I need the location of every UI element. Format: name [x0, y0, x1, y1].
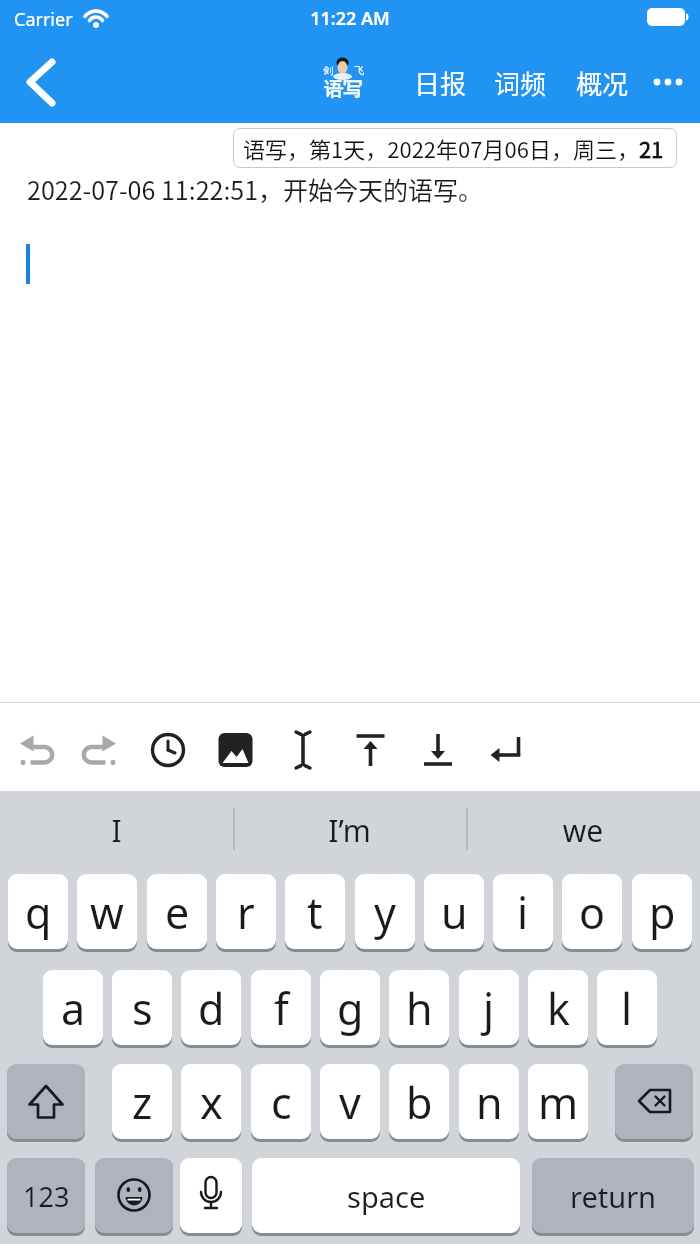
- button[interactable]: [615, 1064, 693, 1140]
- button[interactable]: return: [532, 1158, 694, 1234]
- staticText: return: [570, 1177, 657, 1216]
- button[interactable]: v: [320, 1064, 380, 1140]
- button[interactable]: space: [252, 1158, 520, 1234]
- button[interactable]: b: [389, 1064, 449, 1140]
- staticText: v: [339, 1073, 361, 1132]
- button[interactable]: [650, 70, 686, 94]
- button[interactable]: j: [459, 970, 519, 1046]
- staticText: q: [25, 883, 52, 942]
- button[interactable]: h: [389, 970, 449, 1046]
- button[interactable]: g: [320, 970, 380, 1046]
- staticText: h: [406, 979, 433, 1038]
- staticText: g: [337, 979, 364, 1038]
- button[interactable]: [7, 1064, 85, 1140]
- staticText: s: [132, 979, 153, 1038]
- button[interactable]: i: [493, 874, 553, 950]
- button[interactable]: f: [251, 970, 311, 1046]
- button[interactable]: 剑: [318, 54, 370, 110]
- button[interactable]: s: [112, 970, 172, 1046]
- button[interactable]: t: [285, 874, 345, 950]
- button[interactable]: q: [8, 874, 68, 950]
- staticText: f: [274, 979, 289, 1038]
- button[interactable]: [72, 718, 136, 782]
- staticText: m: [538, 1073, 579, 1132]
- staticText: z: [132, 1073, 153, 1132]
- button[interactable]: o: [562, 874, 622, 950]
- button[interactable]: 概况: [576, 64, 629, 102]
- button[interactable]: I’m: [233, 810, 466, 851]
- button[interactable]: m: [528, 1064, 588, 1140]
- staticText: w: [90, 883, 124, 942]
- staticText: 剑: [323, 64, 333, 77]
- staticText: x: [200, 1073, 223, 1132]
- button[interactable]: a: [43, 970, 103, 1046]
- button[interactable]: y: [355, 874, 415, 950]
- button[interactable]: [139, 718, 203, 782]
- button[interactable]: [409, 718, 473, 782]
- staticText: i: [517, 883, 529, 942]
- staticText: 飞: [354, 64, 364, 77]
- button[interactable]: I: [0, 810, 233, 851]
- button[interactable]: [95, 1158, 173, 1234]
- button[interactable]: r: [216, 874, 276, 950]
- staticText: e: [165, 883, 190, 942]
- staticText: 语写: [324, 78, 362, 102]
- staticText: 123: [23, 1178, 70, 1215]
- staticText: r: [237, 883, 255, 942]
- staticText: y: [374, 883, 396, 942]
- button[interactable]: z: [112, 1064, 172, 1140]
- button[interactable]: [342, 718, 406, 782]
- button[interactable]: [477, 718, 541, 782]
- button[interactable]: u: [424, 874, 484, 950]
- button[interactable]: [207, 718, 271, 782]
- button[interactable]: [274, 718, 338, 782]
- button[interactable]: 123: [7, 1158, 85, 1234]
- staticText: u: [441, 883, 468, 942]
- staticText: a: [61, 979, 86, 1038]
- button[interactable]: w: [77, 874, 137, 950]
- button[interactable]: n: [459, 1064, 519, 1140]
- button[interactable]: c: [251, 1064, 311, 1140]
- staticText: p: [649, 883, 676, 942]
- button[interactable]: d: [181, 970, 241, 1046]
- button[interactable]: 词频: [494, 64, 547, 102]
- button[interactable]: [180, 1158, 242, 1234]
- button[interactable]: x: [181, 1064, 241, 1140]
- staticText: 2022-07-06 11:22:51，开始今天的语写。: [27, 171, 484, 207]
- staticText: Carrier: [14, 7, 73, 32]
- staticText: 语写，第1天，2022年07月06日，周三，21: [243, 132, 664, 164]
- staticText: l: [621, 979, 633, 1038]
- button[interactable]: l: [597, 970, 657, 1046]
- staticText: k: [547, 979, 570, 1038]
- button[interactable]: [4, 718, 68, 782]
- button[interactable]: we: [466, 810, 700, 851]
- staticText: o: [579, 883, 606, 942]
- staticText: b: [406, 1073, 433, 1132]
- staticText: t: [307, 883, 323, 942]
- staticText: 11:22 AM: [300, 6, 400, 31]
- staticText: c: [271, 1073, 292, 1132]
- button[interactable]: [18, 55, 68, 110]
- staticText: j: [483, 979, 495, 1038]
- button[interactable]: p: [632, 874, 692, 950]
- staticText: d: [198, 979, 225, 1038]
- staticText: space: [347, 1177, 426, 1216]
- button[interactable]: e: [147, 874, 207, 950]
- button[interactable]: 日报: [414, 64, 467, 102]
- button[interactable]: k: [528, 970, 588, 1046]
- staticText: n: [476, 1073, 503, 1132]
